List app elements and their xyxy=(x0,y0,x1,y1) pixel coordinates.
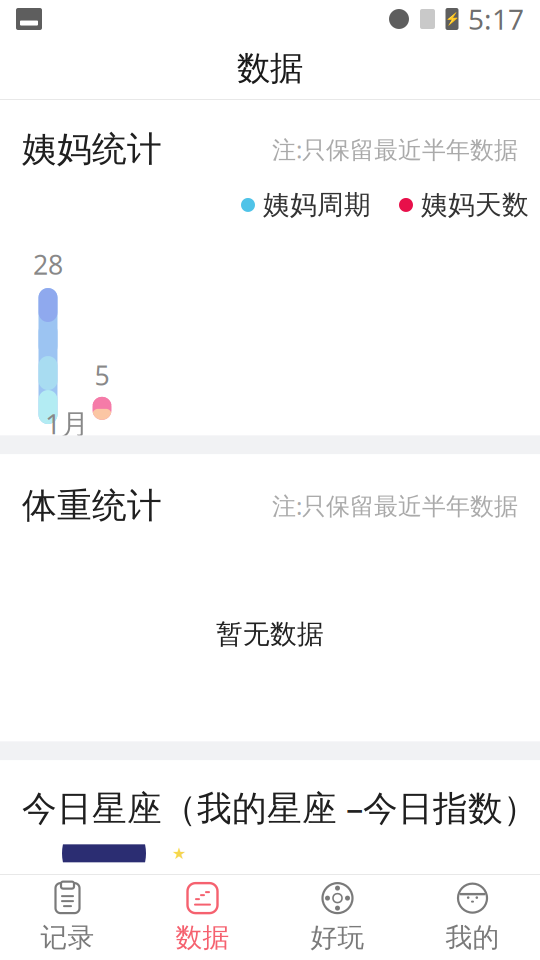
staticText: 1月 xyxy=(45,405,89,442)
staticText: 注:只保留最近半年数据 xyxy=(272,490,518,522)
staticText: 姨妈天数 xyxy=(421,189,529,221)
staticText: 数据 xyxy=(175,921,229,954)
staticText: 我的 xyxy=(445,921,499,954)
staticText: 暂无数据 xyxy=(216,618,324,650)
staticText: 体重统计 xyxy=(22,484,162,527)
staticText: 今日星座（我的星座 –今日指数） xyxy=(22,784,538,830)
staticText: 好玩 xyxy=(310,921,364,954)
staticText: 记录 xyxy=(40,921,94,954)
staticText: ⚡ xyxy=(444,12,459,26)
button[interactable]: 数据 xyxy=(135,875,270,960)
staticText: 姨妈统计 xyxy=(22,128,162,171)
staticText: 5:17 xyxy=(468,0,524,38)
button[interactable]: 好玩 xyxy=(270,875,405,960)
staticText: 数据 xyxy=(237,48,303,89)
button[interactable]: 记录 xyxy=(0,875,135,960)
staticText: 姨妈周期 xyxy=(263,189,371,221)
button[interactable]: 我的 xyxy=(405,875,540,960)
staticText: ★ xyxy=(172,844,186,862)
staticText: 注:只保留最近半年数据 xyxy=(272,133,518,165)
staticText: 28 xyxy=(33,247,63,282)
staticText: 5 xyxy=(94,357,109,393)
